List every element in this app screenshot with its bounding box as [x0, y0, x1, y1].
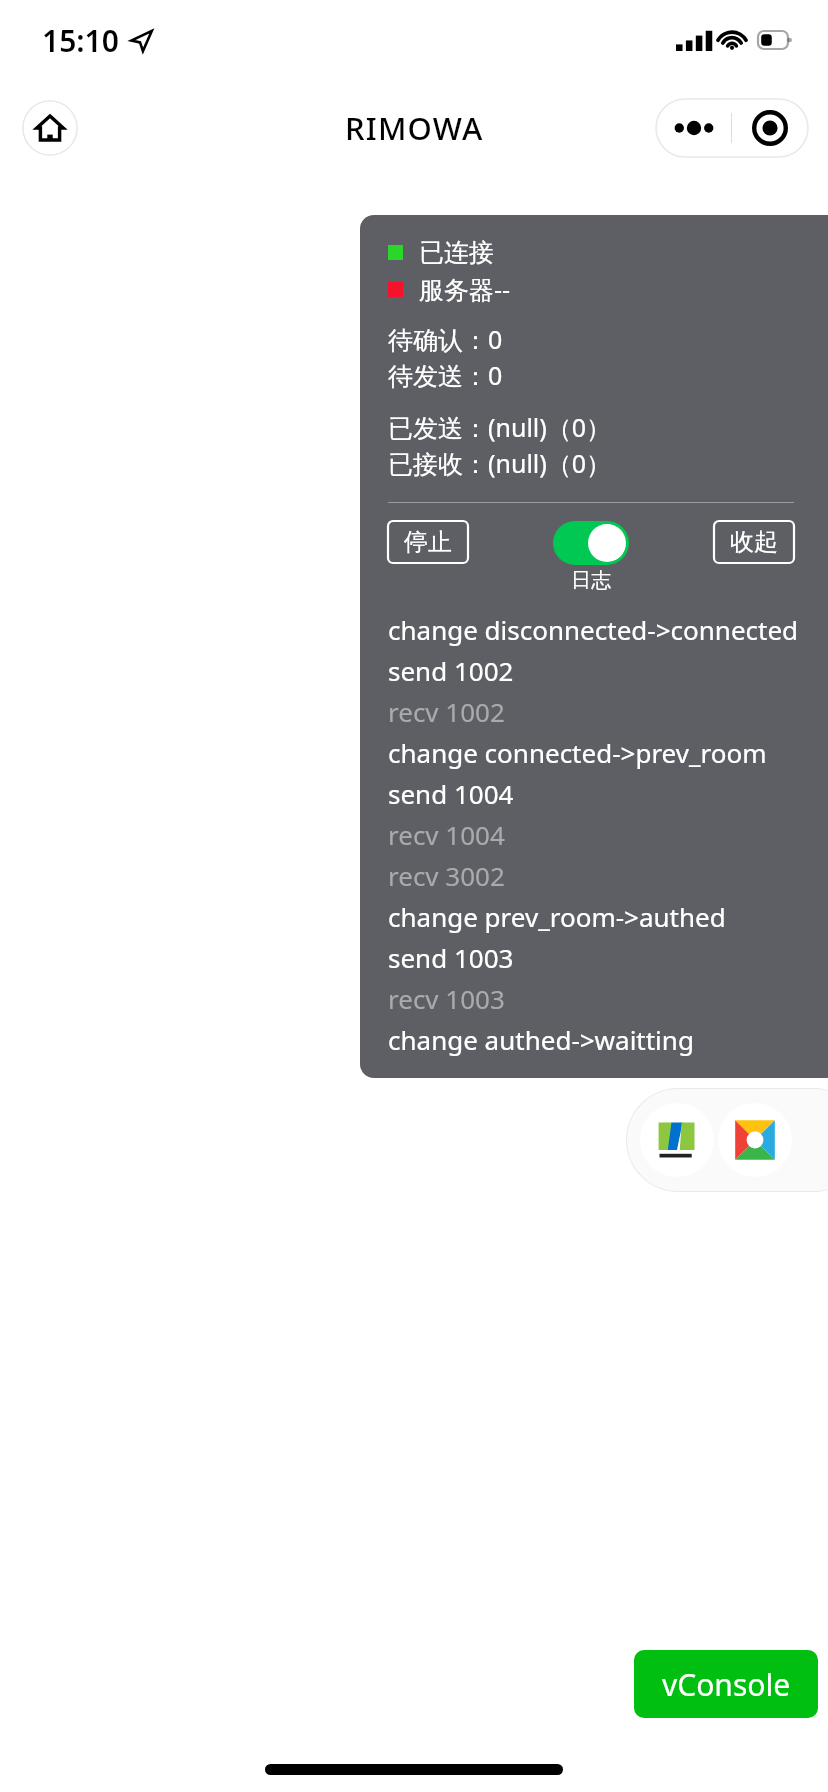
staticText: recv 3002 [388, 858, 505, 893]
staticText: 15:10 [42, 20, 119, 61]
staticText: 待确认：0 [388, 322, 503, 356]
button[interactable]: vConsole [634, 1650, 818, 1718]
staticText: 服务器-- [419, 272, 511, 306]
staticText: 停止 [404, 527, 452, 557]
button[interactable]: Home [22, 100, 78, 156]
staticText: send 1003 [388, 940, 514, 975]
button[interactable]: Mini programs [626, 1088, 828, 1192]
button[interactable]: 停止 [388, 521, 468, 563]
staticText: send 1002 [388, 653, 514, 688]
staticText: 已发送：(null)（0） [388, 410, 612, 444]
staticText: change prev_room->authed [388, 899, 726, 934]
button[interactable]: More [656, 99, 731, 157]
button[interactable]: Log toggle [553, 521, 629, 565]
staticText: change authed->waitting [388, 1022, 694, 1057]
staticText: send 1004 [388, 776, 514, 811]
staticText: recv 1003 [388, 981, 505, 1016]
staticText: RIMOWA [345, 107, 484, 149]
staticText: change connected->prev_room [388, 735, 767, 770]
staticText: 待发送：0 [388, 358, 503, 392]
staticText: 收起 [730, 527, 778, 557]
staticText: 已接收：(null)（0） [388, 446, 612, 480]
button[interactable]: Target [732, 99, 808, 157]
button[interactable]: 收起 [714, 521, 794, 563]
staticText: vConsole [662, 1664, 791, 1705]
staticText: 日志 [571, 568, 611, 593]
staticText: recv 1004 [388, 817, 505, 852]
staticText: change disconnected->connected [388, 612, 799, 647]
staticText: recv 1002 [388, 694, 505, 729]
staticText: 已连接 [419, 237, 494, 268]
